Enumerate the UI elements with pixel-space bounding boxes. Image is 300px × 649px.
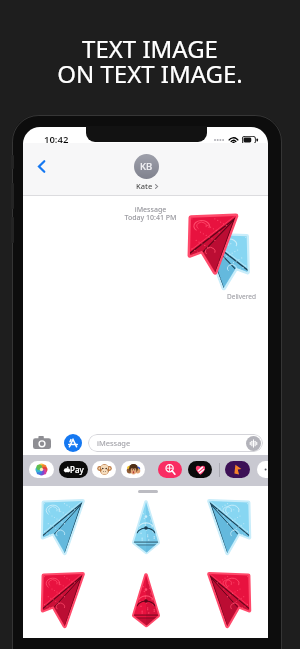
button[interactable]: Sticker xyxy=(187,491,268,563)
button[interactable]: Camera xyxy=(31,432,53,452)
staticText: Delivered xyxy=(227,292,256,301)
staticText: iMessage Today 10:41 PM xyxy=(28,205,268,222)
button[interactable]: Apple Pay xyxy=(59,461,88,478)
button[interactable]: Sticker xyxy=(187,564,268,636)
button[interactable]: Images xyxy=(158,461,182,478)
button[interactable]: Audio message xyxy=(246,436,261,451)
button[interactable]: Digital Touch xyxy=(188,461,212,478)
staticText: Kate xyxy=(136,181,153,191)
button[interactable]: Stickers xyxy=(225,461,250,478)
button[interactable]: Sticker xyxy=(23,491,105,563)
button[interactable]: iMessage xyxy=(88,434,263,452)
staticText: KB xyxy=(140,160,153,173)
staticText: iMessage xyxy=(97,438,131,448)
button[interactable]: Memoji xyxy=(121,461,145,478)
button[interactable]: Animoji xyxy=(92,461,116,478)
staticText: Pay xyxy=(70,464,84,475)
button[interactable]: KB xyxy=(134,154,159,179)
button[interactable]: App Store xyxy=(64,434,82,452)
button[interactable]: Sticker xyxy=(104,491,188,563)
button[interactable]: Sticker xyxy=(23,564,105,636)
button[interactable]: Sticker xyxy=(104,564,188,636)
staticText: TEXT IMAGE ON TEXT IMAGE. xyxy=(0,32,300,90)
button[interactable]: Back xyxy=(28,153,55,179)
button[interactable]: More xyxy=(257,461,268,478)
staticText: 10:42 xyxy=(44,133,69,146)
button[interactable]: Photos xyxy=(29,461,54,478)
